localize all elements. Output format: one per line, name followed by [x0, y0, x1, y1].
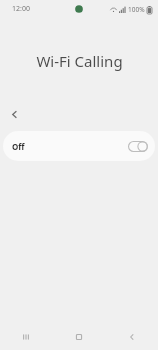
staticText: 100% — [128, 5, 145, 14]
button[interactable]: Navigate up — [3, 103, 25, 125]
button[interactable]: Back — [105, 324, 158, 350]
button[interactable]: Home — [52, 324, 105, 350]
button[interactable]: Recent apps — [0, 324, 52, 350]
staticText: 12:00 — [12, 4, 30, 14]
staticText: Off — [12, 141, 25, 152]
staticText: Wi-Fi Calling — [36, 51, 123, 71]
button[interactable]: Off — [3, 131, 155, 161]
